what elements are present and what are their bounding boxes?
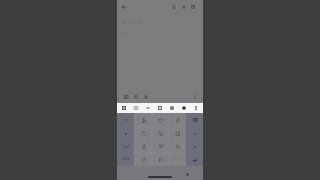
staticText: た	[141, 130, 147, 137]
button[interactable]: Clipboard	[156, 104, 164, 112]
staticText: 小	[141, 156, 147, 163]
button[interactable]: あ	[135, 113, 152, 127]
button[interactable]: key 1 0	[117, 127, 135, 140]
staticText: ま	[141, 143, 147, 150]
staticText: あa1	[122, 144, 130, 149]
button[interactable]: Stickers	[132, 104, 140, 112]
button[interactable]: Archive	[188, 2, 197, 11]
staticText: メモ	[120, 31, 128, 36]
button[interactable]: Pin note	[169, 2, 178, 11]
staticText: わ	[158, 156, 164, 163]
staticText: タイトル	[121, 19, 142, 25]
button[interactable]: Translate	[144, 104, 152, 112]
button[interactable]: More options	[190, 92, 199, 101]
button[interactable]: 小	[135, 153, 152, 166]
staticText: は	[175, 130, 181, 137]
button[interactable]: か	[152, 113, 169, 127]
button[interactable]: Keyboard layouts	[120, 104, 128, 112]
button[interactable]: Switch keyboard	[184, 171, 191, 178]
button[interactable]: あa1	[117, 140, 135, 153]
button[interactable]: Voice input	[192, 104, 200, 112]
staticText: や	[158, 143, 164, 150]
button[interactable]: Reminder	[179, 2, 188, 11]
staticText: 記号	[122, 157, 130, 162]
button[interactable]: Colour palette	[131, 92, 140, 101]
button[interactable]: key 3 4	[186, 153, 203, 166]
button[interactable]: ら	[169, 140, 186, 153]
staticText: さ	[175, 117, 181, 124]
button[interactable]: 記号	[117, 153, 135, 166]
button[interactable]: key 2 4	[186, 140, 203, 153]
staticText: な	[158, 130, 164, 137]
button[interactable]: Text formatting	[141, 92, 150, 101]
button[interactable]: key 0 4	[186, 113, 203, 127]
button[interactable]: や	[152, 140, 169, 153]
button[interactable]: た	[135, 127, 152, 140]
button[interactable]: key 0 0	[117, 113, 135, 127]
button[interactable]: Add	[121, 92, 130, 101]
staticText: あ	[141, 117, 147, 124]
button[interactable]: な	[152, 127, 169, 140]
button[interactable]: は	[169, 127, 186, 140]
button[interactable]: ま	[135, 140, 152, 153]
button[interactable]: Back	[119, 2, 128, 11]
staticText: ら	[175, 143, 181, 150]
button[interactable]: key 1 4	[186, 127, 203, 140]
button[interactable]: Settings	[168, 104, 176, 112]
button[interactable]: わ	[152, 153, 169, 166]
button[interactable]: Emoji	[180, 104, 188, 112]
button[interactable]: さ	[169, 113, 186, 127]
staticText: か	[158, 117, 164, 124]
